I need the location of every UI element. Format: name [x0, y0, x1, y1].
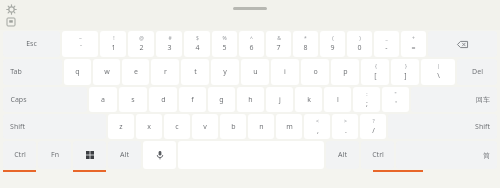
staticText: w	[104, 67, 110, 77]
staticText: $	[196, 35, 199, 42]
button[interactable]: Shift	[3, 114, 106, 139]
button[interactable]: *	[293, 31, 318, 57]
staticText: b	[231, 122, 236, 132]
button[interactable]: w	[93, 59, 120, 85]
staticText: (	[332, 35, 334, 42]
button[interactable]: a	[89, 87, 117, 112]
button[interactable]: Voice input	[143, 141, 176, 169]
button[interactable]: $	[184, 31, 210, 57]
button[interactable]: g	[208, 87, 235, 112]
staticText: @	[139, 35, 144, 42]
staticText: o	[313, 67, 318, 77]
button[interactable]: e	[122, 59, 149, 85]
button[interactable]: Esc	[3, 31, 60, 57]
button[interactable]: r	[151, 59, 179, 85]
button[interactable]: Alt	[326, 141, 359, 169]
button[interactable]: n	[248, 114, 274, 139]
button[interactable]: }	[391, 59, 419, 85]
button[interactable]: Settings	[5, 3, 17, 15]
button[interactable]: z	[108, 114, 134, 139]
staticText: }	[405, 63, 407, 70]
button[interactable]: &	[266, 31, 291, 57]
button[interactable]: i	[271, 59, 299, 85]
button[interactable]: f	[179, 87, 206, 112]
staticText: Esc	[26, 39, 37, 49]
button[interactable]: |	[421, 59, 455, 85]
staticText: 8	[303, 43, 308, 53]
staticText: v	[203, 122, 207, 132]
button[interactable]: s	[119, 87, 147, 112]
button[interactable]: ?	[360, 114, 386, 139]
button[interactable]: Alt	[108, 141, 141, 169]
button[interactable]: @	[128, 31, 154, 57]
button[interactable]: Keyboard layout	[6, 17, 16, 27]
button[interactable]: x	[136, 114, 162, 139]
staticText: -	[385, 43, 388, 53]
button[interactable]: "	[382, 87, 409, 112]
staticText: j	[279, 95, 281, 105]
staticText: )	[359, 35, 361, 42]
button[interactable]: ^	[239, 31, 264, 57]
button[interactable]: 简	[396, 141, 497, 169]
button[interactable]: y	[211, 59, 239, 85]
staticText: e	[134, 67, 138, 77]
button[interactable]: Windows	[73, 141, 106, 169]
staticText: ]	[404, 71, 407, 81]
button[interactable]: (	[320, 31, 345, 57]
button[interactable]: q	[64, 59, 91, 85]
button[interactable]: )	[347, 31, 372, 57]
button[interactable]: <	[304, 114, 330, 139]
button[interactable]: c	[164, 114, 190, 139]
button[interactable]: Fn	[38, 141, 71, 169]
button[interactable]: j	[266, 87, 293, 112]
button[interactable]: :	[353, 87, 380, 112]
staticText: ?	[372, 118, 375, 125]
staticText: c	[175, 122, 179, 132]
staticText: t	[194, 67, 197, 77]
staticText: Caps	[10, 95, 27, 105]
staticText: `	[80, 43, 82, 53]
button[interactable]: t	[181, 59, 209, 85]
button[interactable]: Drag handle	[233, 7, 267, 10]
button[interactable]: b	[220, 114, 246, 139]
staticText: 2	[139, 43, 144, 53]
staticText: :	[366, 91, 368, 98]
staticText: {	[375, 63, 377, 70]
button[interactable]: m	[276, 114, 302, 139]
button[interactable]: v	[192, 114, 218, 139]
staticText: %	[222, 35, 227, 42]
button[interactable]: 回车	[411, 87, 497, 112]
button[interactable]: Ctrl	[361, 141, 394, 169]
button[interactable]: Del	[457, 59, 497, 85]
staticText: Ctrl	[14, 150, 26, 160]
button[interactable]: #	[156, 31, 182, 57]
button[interactable]: Shift	[388, 114, 497, 139]
button[interactable]: _	[374, 31, 399, 57]
button[interactable]: Backspace	[428, 31, 497, 57]
button[interactable]: ~	[62, 31, 98, 57]
button[interactable]: o	[301, 59, 329, 85]
staticText: Alt	[338, 150, 347, 160]
button[interactable]: Tab	[3, 59, 62, 85]
staticText: y	[223, 67, 227, 77]
staticText: !	[113, 35, 115, 42]
staticText: >	[344, 118, 347, 125]
button[interactable]: k	[295, 87, 322, 112]
staticText: 3	[167, 43, 172, 53]
staticText: ,	[317, 126, 319, 136]
button[interactable]: +	[401, 31, 426, 57]
button[interactable]: d	[149, 87, 177, 112]
button[interactable]: {	[361, 59, 389, 85]
button[interactable]: >	[332, 114, 358, 139]
button[interactable]: %	[212, 31, 237, 57]
button[interactable]: u	[241, 59, 269, 85]
button[interactable]: l	[324, 87, 351, 112]
button[interactable]: Caps	[3, 87, 87, 112]
staticText: Shift	[475, 122, 490, 132]
button[interactable]: Ctrl	[3, 141, 36, 169]
button[interactable]: p	[331, 59, 359, 85]
staticText: Alt	[120, 150, 129, 160]
button[interactable]: !	[100, 31, 126, 57]
button[interactable]: h	[237, 87, 264, 112]
